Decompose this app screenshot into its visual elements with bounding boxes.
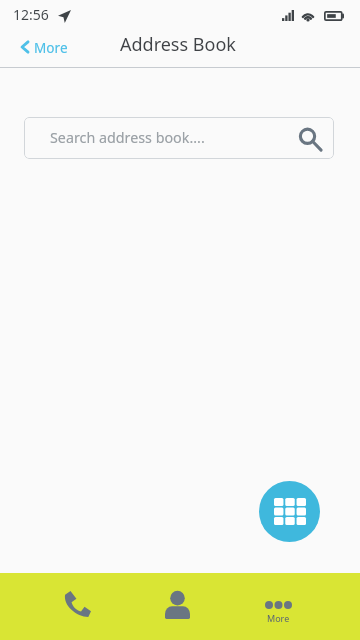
- staticText: Search address book....: [50, 128, 205, 147]
- staticText: More: [267, 612, 290, 624]
- staticText: 12:56: [13, 5, 49, 24]
- button[interactable]: Contacts: [143, 573, 211, 640]
- staticText: More: [34, 38, 68, 57]
- button[interactable]: Search address book....: [24, 117, 334, 159]
- button[interactable]: Dial pad: [259, 481, 320, 542]
- button[interactable]: More: [244, 573, 312, 640]
- staticText: Address Book: [120, 32, 236, 57]
- button[interactable]: More: [0, 32, 82, 63]
- button[interactable]: Phone: [43, 573, 111, 640]
